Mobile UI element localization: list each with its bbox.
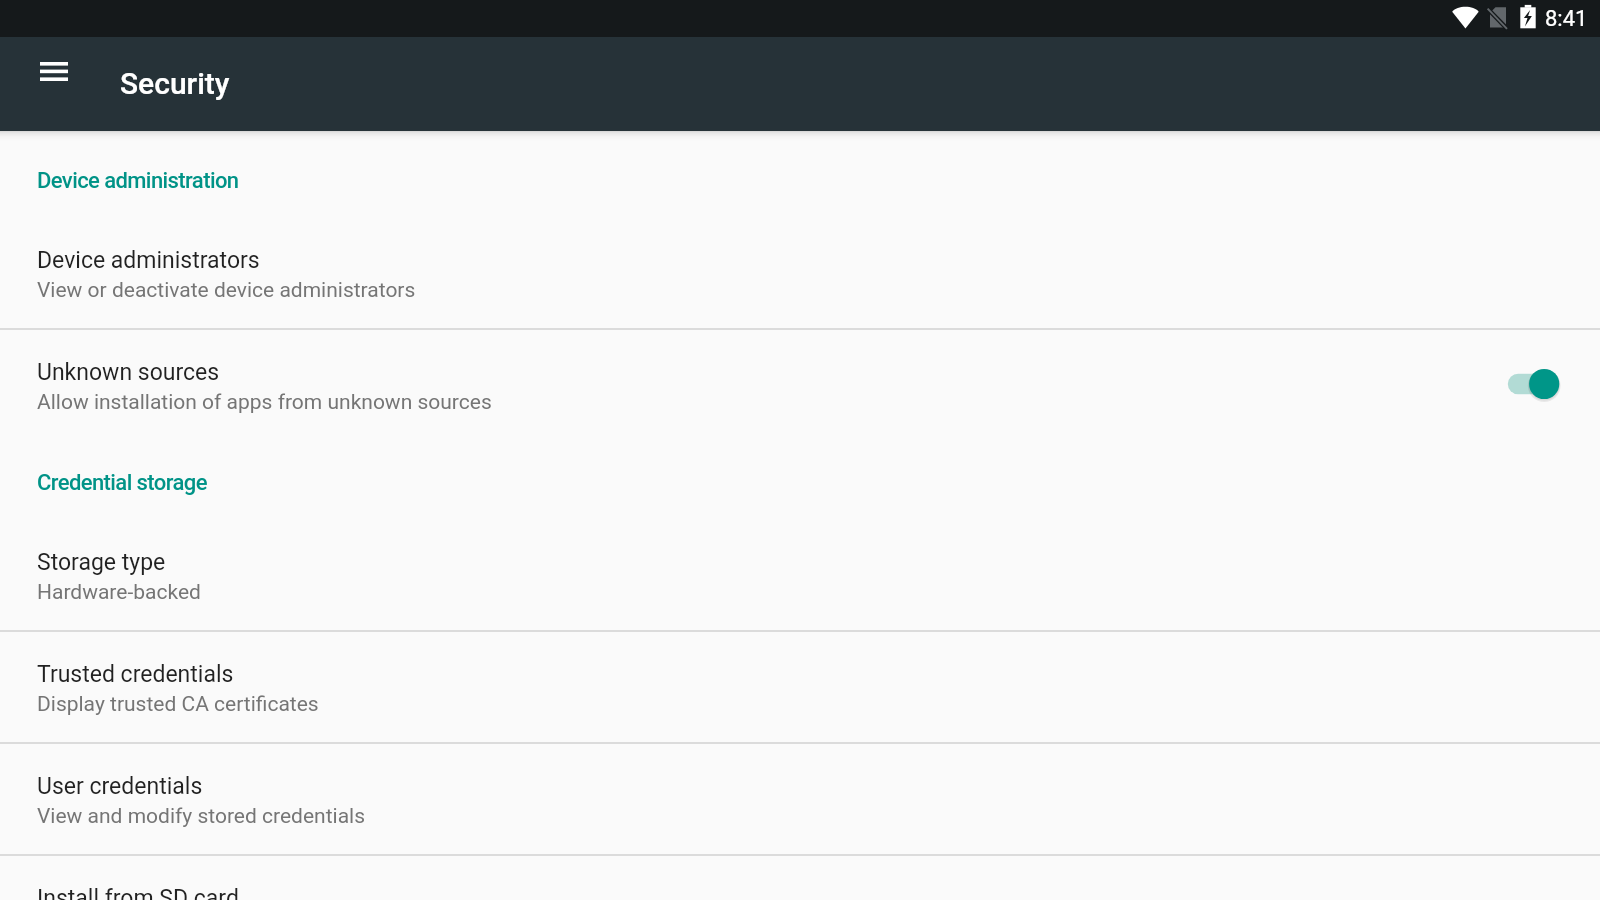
staticText: Trusted credentials [37,661,234,688]
button[interactable]: Storage type [0,496,1600,630]
button[interactable]: Device administrators [0,194,1600,328]
staticText: Device administration [37,168,1600,194]
button[interactable]: Open navigation drawer [26,43,82,99]
button[interactable]: User credentials [0,744,1600,854]
staticText: User credentials [37,773,203,800]
button[interactable]: Install from SD card [0,856,1600,900]
staticText: Credential storage [37,470,1600,496]
staticText: 8:41 [1545,6,1588,32]
button[interactable]: Unknown sources, on [1496,359,1569,409]
staticText: Allow installation of apps from unknown … [37,390,492,415]
staticText: Security [120,66,230,101]
staticText: Device administrators [37,247,260,274]
staticText: Unknown sources [37,359,220,386]
staticText: View or deactivate device administrators [37,278,416,303]
staticText: Hardware-backed [37,580,201,605]
button[interactable]: Unknown sources [0,330,1600,415]
button[interactable]: Trusted credentials [0,632,1600,742]
staticText: Display trusted CA certificates [37,692,319,717]
staticText: View and modify stored credentials [37,804,366,829]
staticText: Storage type [37,549,166,576]
staticText: Install from SD card [37,885,239,900]
